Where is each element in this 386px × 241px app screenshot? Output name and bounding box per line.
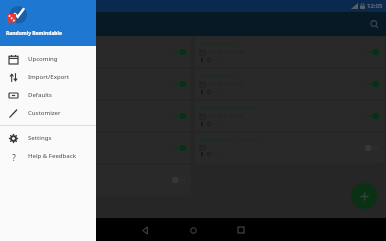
button[interactable]: Customizer — [0, 104, 96, 122]
staticText: Read a book — [7, 136, 43, 144]
staticText: Customizer — [28, 109, 61, 117]
button[interactable]: Recent apps — [233, 222, 249, 238]
button[interactable] — [172, 79, 186, 89]
button[interactable]: Import/Export — [0, 68, 96, 86]
staticText: 12:05 — [367, 2, 383, 10]
button[interactable]: Drink water — [2, 69, 191, 99]
button[interactable]: Motivational quote — [195, 101, 384, 131]
staticText: Motivational quote — [200, 104, 255, 112]
button[interactable] — [365, 111, 379, 121]
staticText: Upcoming — [28, 55, 58, 63]
button[interactable]: Read a book — [2, 133, 191, 163]
button[interactable]: ? — [0, 147, 96, 165]
button[interactable]: Upcoming — [0, 50, 96, 68]
staticText: Take a break — [200, 40, 237, 48]
staticText: Settings — [28, 134, 52, 142]
button[interactable]: Take a break — [195, 37, 384, 67]
button[interactable]: Search — [362, 12, 386, 36]
staticText: Drink water — [7, 72, 41, 80]
staticText: Defaults — [28, 91, 53, 99]
staticText: Import/Export — [28, 73, 70, 81]
button[interactable]: Defaults — [0, 86, 96, 104]
staticText: Wake up — [7, 40, 32, 48]
button[interactable] — [172, 47, 186, 57]
staticText: Bible verse of the day — [200, 136, 262, 144]
staticText: Call a friend — [200, 72, 235, 80]
staticText: ? — [12, 152, 16, 161]
staticText: Stretch — [7, 104, 28, 112]
button[interactable]: Add reminder — [351, 183, 377, 209]
button[interactable] — [365, 79, 379, 89]
button[interactable]: Settings — [0, 129, 96, 147]
button[interactable] — [172, 111, 186, 121]
button[interactable] — [365, 143, 379, 153]
button[interactable]: Stretch — [2, 101, 191, 131]
staticText: Randomly Remindable — [6, 30, 63, 37]
staticText: 2/1/16 11:00 AM — [14, 113, 53, 120]
button[interactable] — [172, 175, 186, 185]
button[interactable]: Walk outside — [2, 165, 191, 195]
staticText: Help & Feedback — [28, 152, 77, 160]
button[interactable] — [172, 143, 186, 153]
button[interactable] — [365, 47, 379, 57]
button[interactable]: Wake up — [2, 37, 191, 67]
staticText: 2/1/16 7:00 AM — [14, 49, 50, 56]
staticText: 2/1/16 9:30 AM — [14, 81, 50, 88]
button[interactable]: Back — [137, 222, 153, 238]
button[interactable]: Call a friend — [195, 69, 384, 99]
button[interactable]: Home — [185, 222, 201, 238]
